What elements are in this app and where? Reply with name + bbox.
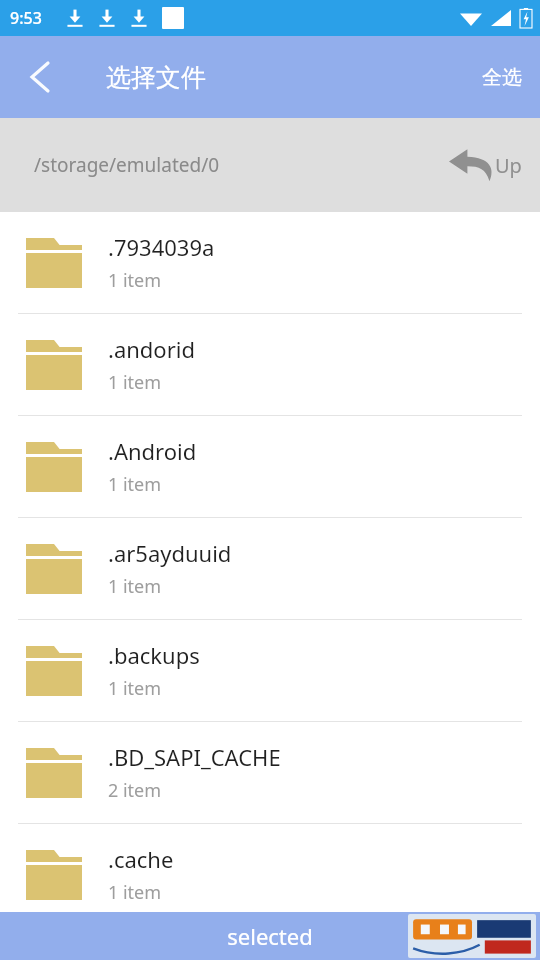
button[interactable]: .BD_SAPI_CACHE: [0, 722, 540, 823]
staticText: 1 item: [108, 574, 162, 599]
button[interactable]: selected: [0, 912, 540, 960]
staticText: 1 item: [108, 472, 162, 497]
staticText: 全选: [482, 65, 522, 90]
staticText: .BD_SAPI_CACHE: [108, 742, 281, 772]
staticText: .ar5ayduuid: [108, 538, 232, 568]
staticText: 1 item: [108, 268, 162, 293]
staticText: /storage/emulated/0: [34, 152, 220, 178]
button[interactable]: .backups: [0, 620, 540, 721]
staticText: Up: [495, 152, 522, 179]
staticText: .andorid: [108, 334, 195, 364]
button[interactable]: 全选: [464, 51, 540, 104]
button[interactable]: Back: [12, 49, 68, 105]
staticText: 1 item: [108, 676, 162, 701]
staticText: 选择文件: [106, 62, 206, 93]
button[interactable]: .7934039a: [0, 212, 540, 313]
staticText: 9:53: [10, 7, 42, 29]
button[interactable]: .Android: [0, 416, 540, 517]
staticText: .cache: [108, 844, 174, 874]
staticText: 1 item: [108, 370, 162, 395]
button[interactable]: .andorid: [0, 314, 540, 415]
button[interactable]: .ar5ayduuid: [0, 518, 540, 619]
staticText: .backups: [108, 640, 200, 670]
button[interactable]: Up: [449, 148, 522, 182]
staticText: .7934039a: [108, 232, 215, 262]
staticText: selected: [227, 921, 313, 951]
staticText: 2 item: [108, 778, 162, 803]
staticText: 1 item: [108, 880, 162, 905]
button[interactable]: .cache: [0, 824, 540, 925]
staticText: .Android: [108, 436, 197, 466]
